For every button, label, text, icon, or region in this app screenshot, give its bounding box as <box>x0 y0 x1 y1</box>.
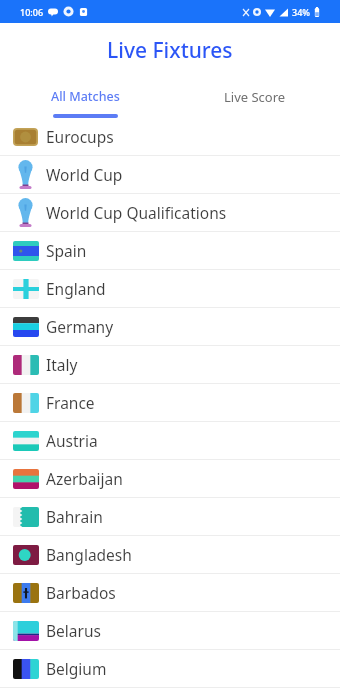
button[interactable]: Live Score <box>170 77 340 118</box>
staticText: All Matches <box>51 88 120 105</box>
staticText: Live Score <box>224 88 286 106</box>
staticText: 10:06 <box>20 6 44 18</box>
button[interactable]: Barbados <box>0 574 340 612</box>
staticText: Belarus <box>46 620 101 641</box>
button[interactable]: All Matches <box>0 77 170 118</box>
staticText: Bangladesh <box>46 544 132 565</box>
button[interactable]: Bahrain <box>0 498 340 536</box>
button[interactable]: France <box>0 384 340 422</box>
staticText: France <box>46 392 95 413</box>
staticText: Spain <box>46 240 87 261</box>
button[interactable]: Belgium <box>0 650 340 688</box>
staticText: Azerbaijan <box>46 468 123 489</box>
staticText: 34% <box>292 6 310 18</box>
button[interactable]: Austria <box>0 422 340 460</box>
button[interactable]: World Cup <box>0 156 340 194</box>
button[interactable]: Azerbaijan <box>0 460 340 498</box>
staticText: Live Fixtures <box>107 36 233 65</box>
staticText: Germany <box>46 316 114 337</box>
staticText: Eurocups <box>46 126 114 147</box>
staticText: Italy <box>46 354 78 375</box>
button[interactable]: Germany <box>0 308 340 346</box>
staticText: Barbados <box>46 582 116 603</box>
button[interactable]: England <box>0 270 340 308</box>
staticText: Bahrain <box>46 506 103 527</box>
staticText: World Cup Qualifications <box>46 202 227 223</box>
button[interactable]: Italy <box>0 346 340 384</box>
staticText: Belgium <box>46 658 107 679</box>
button[interactable]: World Cup Qualifications <box>0 194 340 232</box>
staticText: England <box>46 278 106 299</box>
staticText: World Cup <box>46 164 123 185</box>
staticText: Austria <box>46 430 98 451</box>
button[interactable]: Eurocups <box>0 118 340 156</box>
button[interactable]: Belarus <box>0 612 340 650</box>
button[interactable]: Spain <box>0 232 340 270</box>
button[interactable]: Bangladesh <box>0 536 340 574</box>
